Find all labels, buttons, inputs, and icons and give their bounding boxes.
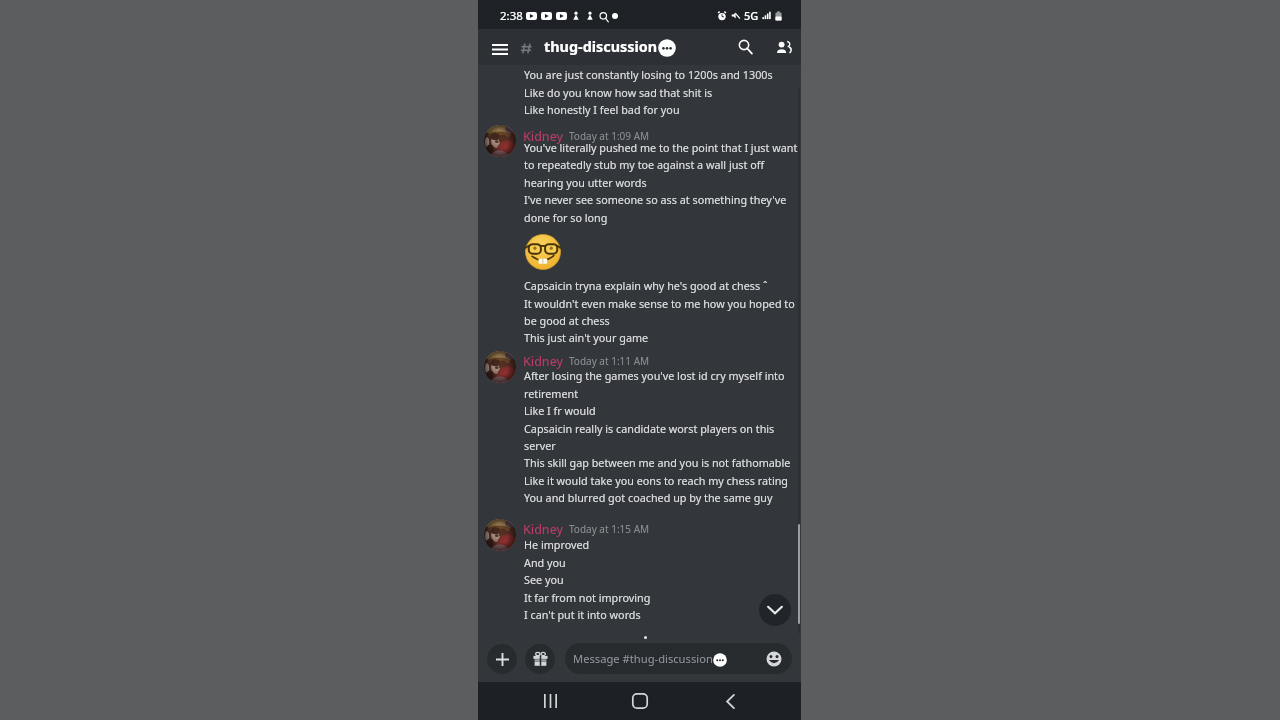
button[interactable]: Select emoji <box>764 649 784 669</box>
staticText: done for so long <box>524 210 608 225</box>
staticText: to repeatedly stub my toe against a wall… <box>524 157 765 172</box>
staticText: Like I fr would <box>524 403 596 418</box>
staticText: Today at 1:11 AM <box>569 354 650 368</box>
button[interactable]: Members list <box>770 34 796 60</box>
button[interactable]: Back <box>710 682 750 720</box>
button[interactable]: server <box>478 437 801 454</box>
button[interactable]: retirement <box>478 385 801 402</box>
button[interactable]: I can't put it into words <box>478 606 801 623</box>
staticText: Capsaicin really is candidate worst play… <box>524 421 775 436</box>
button[interactable]: Capsaicin really is candidate worst play… <box>478 420 801 437</box>
staticText: I can't put it into words <box>524 607 641 622</box>
button[interactable]: I've never see someone so ass at somethi… <box>478 191 801 208</box>
button[interactable]: Home <box>620 682 660 720</box>
staticText: It wouldn't even make sense to me how yo… <box>524 296 795 311</box>
button[interactable]: be good at chess <box>478 312 801 329</box>
button[interactable]: Like honestly I feel bad for you <box>478 101 801 118</box>
staticText: Like it would take you eons to reach my … <box>524 473 789 488</box>
staticText: Like honestly I feel bad for you <box>524 102 680 117</box>
button[interactable]: to repeatedly stub my toe against a wall… <box>478 156 801 173</box>
button[interactable]: See you <box>478 571 801 588</box>
staticText: After losing the games you've lost id cr… <box>524 368 785 383</box>
button[interactable]: You've literally pushed me to the point … <box>478 139 801 156</box>
button[interactable]: Message #thug-discussion <box>565 643 792 674</box>
staticText: retirement <box>524 386 579 401</box>
button[interactable]: Like do you know how sad that shit is <box>478 84 801 101</box>
button[interactable]: Kidney <box>523 521 564 538</box>
staticText: hearing you utter words <box>524 175 647 190</box>
staticText: server <box>524 438 556 453</box>
staticText: Today at 1:09 AM <box>569 129 650 143</box>
button[interactable]: Like it would take you eons to reach my … <box>478 472 801 489</box>
staticText: be good at chess <box>524 313 610 328</box>
staticText: Like do you know how sad that shit is <box>524 85 713 100</box>
button[interactable]: Kidney <box>523 353 564 370</box>
staticText: Message #thug-discussion <box>573 651 713 666</box>
button[interactable]: Like I fr would <box>478 402 801 419</box>
button[interactable]: Kidney avatar <box>484 519 516 551</box>
button[interactable]: Jump to present <box>759 594 791 626</box>
staticText: This just ain't your game <box>524 330 649 345</box>
button[interactable]: Kidney avatar <box>484 125 516 157</box>
staticText: 2:38 <box>500 8 523 24</box>
staticText: Today at 1:15 AM <box>569 522 650 536</box>
button[interactable]: done for so long <box>478 209 801 226</box>
staticText: You and blurred got coached up by the sa… <box>524 490 773 505</box>
staticText: You are just constantly losing to 1200s … <box>524 67 773 82</box>
staticText: 5G <box>744 8 759 23</box>
button[interactable]: thug-discussion <box>518 37 676 57</box>
button[interactable]: Send a gift <box>525 644 555 674</box>
button[interactable]: This skill gap between me and you is not… <box>478 454 801 471</box>
button[interactable]: Open navigation drawer <box>487 34 513 60</box>
staticText: It far from not improving <box>524 590 651 605</box>
button[interactable]: And you <box>478 554 801 571</box>
staticText: See you <box>524 572 564 587</box>
button[interactable]: It far from not improving <box>478 589 801 606</box>
staticText: Capsaicin tryna explain why he's good at… <box>524 278 768 293</box>
button[interactable]: You are just constantly losing to 1200s … <box>478 66 801 83</box>
button[interactable]: Recent apps <box>530 682 570 720</box>
button[interactable]: Kidney avatar <box>484 351 516 383</box>
staticText: This skill gap between me and you is not… <box>524 455 791 470</box>
staticText: I've never see someone so ass at somethi… <box>524 192 787 207</box>
button[interactable]: After losing the games you've lost id cr… <box>478 367 801 384</box>
staticText: thug-discussion <box>544 37 658 57</box>
button[interactable]: Add attachment <box>487 644 517 674</box>
staticText: You've literally pushed me to the point … <box>524 140 798 155</box>
button[interactable]: hearing you utter words <box>478 174 801 191</box>
button[interactable]: Capsaicin tryna explain why he's good at… <box>478 277 801 294</box>
button[interactable]: Search <box>732 34 758 60</box>
staticText: And you <box>524 555 566 570</box>
staticText: He improved <box>524 537 590 552</box>
button[interactable]: It wouldn't even make sense to me how yo… <box>478 295 801 312</box>
button[interactable]: You and blurred got coached up by the sa… <box>478 489 801 506</box>
button[interactable]: This just ain't your game <box>478 329 801 346</box>
button[interactable]: Kidney <box>523 128 564 145</box>
button[interactable]: He improved <box>478 536 801 553</box>
